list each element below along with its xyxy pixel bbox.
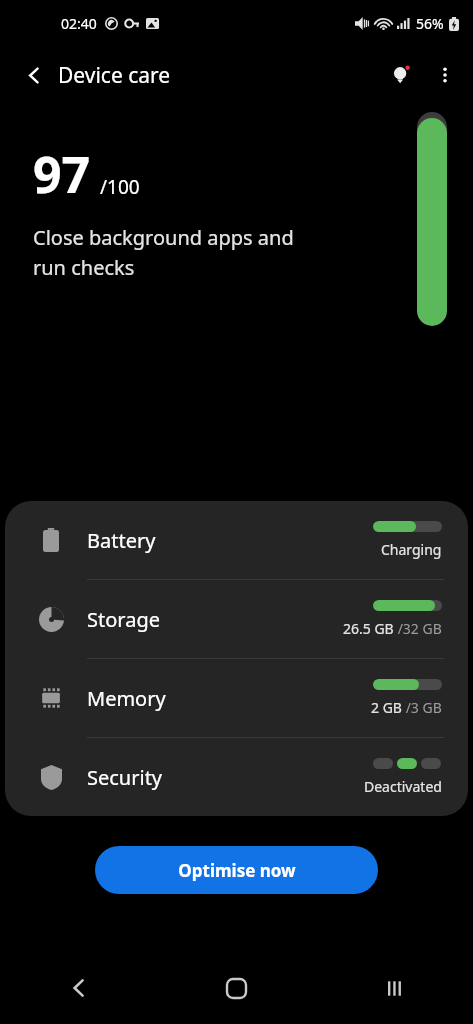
button[interactable]: Memory [5,659,468,737]
button[interactable]: Storage [5,580,468,658]
staticText: 56% [416,14,444,33]
button[interactable]: Recent apps [315,952,473,1024]
staticText: Deactivated [364,777,442,796]
staticText: Optimise now [178,859,296,882]
staticText: /100 [100,174,140,200]
button[interactable]: Security [5,738,468,816]
staticText: 02:40 [61,14,97,33]
staticText: Security [87,764,163,791]
staticText: Storage [87,606,160,633]
staticText: 26.5 GB [343,619,394,638]
button[interactable]: Back [14,55,54,95]
button[interactable]: Battery [5,501,468,579]
staticText: 97 [33,140,91,208]
button[interactable]: Optimise now [95,846,378,894]
staticText: /32 GB [394,619,442,638]
button[interactable]: Tips [379,53,423,97]
button[interactable]: Back [0,952,157,1024]
button[interactable]: Home [157,952,315,1024]
staticText: Device care [58,61,171,90]
staticText: Charging [381,540,442,559]
staticText: Battery [87,527,156,554]
staticText: 2 GB [371,698,402,717]
staticText: Close background apps and run checks [33,224,294,281]
staticText: /3 GB [402,698,442,717]
button[interactable]: More options [423,53,467,97]
staticText: Memory [87,685,166,712]
